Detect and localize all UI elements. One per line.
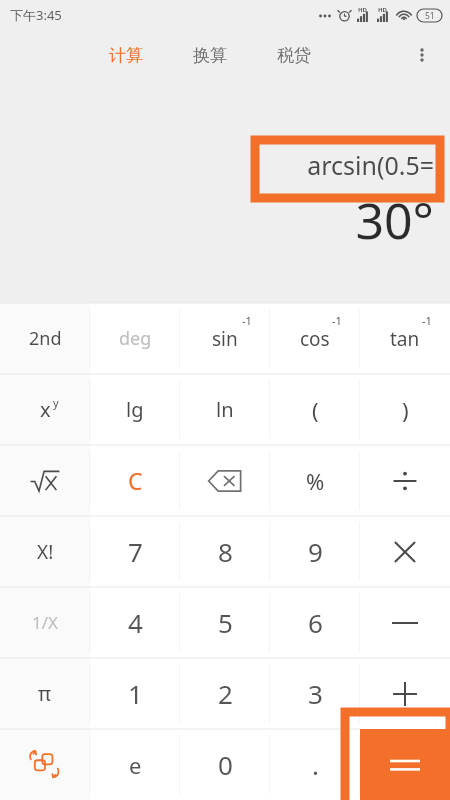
- button[interactable]: 换算: [187, 39, 233, 72]
- staticText: 换算: [193, 45, 227, 66]
- button[interactable]: 6: [270, 587, 360, 658]
- staticText: -1: [422, 313, 432, 328]
- button[interactable]: 2: [180, 658, 270, 729]
- staticText: tan: [390, 326, 420, 352]
- button[interactable]: tan: [360, 303, 450, 374]
- staticText: HD: [378, 6, 387, 14]
- button[interactable]: %: [270, 445, 360, 516]
- staticText: .: [312, 747, 319, 782]
- button[interactable]: π: [0, 658, 90, 729]
- staticText: 3: [308, 676, 323, 711]
- button[interactable]: Plus: [360, 658, 450, 729]
- staticText: -1: [332, 313, 342, 328]
- button[interactable]: 0: [180, 729, 270, 800]
- staticText: 5: [218, 605, 233, 640]
- button[interactable]: 税贷: [271, 39, 317, 72]
- button[interactable]: Square root: [0, 445, 90, 516]
- staticText: sin: [212, 326, 238, 352]
- staticText: 4: [128, 605, 143, 640]
- button[interactable]: X!: [0, 516, 90, 587]
- button[interactable]: lg: [90, 374, 180, 445]
- button[interactable]: ln: [180, 374, 270, 445]
- staticText: ln: [216, 396, 234, 423]
- staticText: 7: [128, 534, 143, 569]
- staticText: ): [402, 395, 409, 425]
- button[interactable]: Minus: [360, 587, 450, 658]
- button[interactable]: Equals: [360, 729, 450, 800]
- button[interactable]: .: [270, 729, 360, 800]
- button[interactable]: 5: [180, 587, 270, 658]
- staticText: 税贷: [277, 45, 311, 66]
- staticText: (: [312, 395, 319, 425]
- button[interactable]: 2nd: [0, 303, 90, 374]
- button[interactable]: 8: [180, 516, 270, 587]
- staticText: y: [53, 395, 59, 410]
- staticText: X!: [37, 539, 54, 565]
- button[interactable]: 3: [270, 658, 360, 729]
- staticText: C: [128, 465, 143, 496]
- staticText: x: [40, 396, 51, 423]
- staticText: HD: [358, 6, 367, 14]
- staticText: π: [38, 680, 52, 707]
- staticText: 下午3:45: [10, 6, 62, 24]
- button[interactable]: x: [0, 374, 90, 445]
- staticText: %: [306, 466, 325, 496]
- staticText: 30°: [355, 186, 434, 254]
- button[interactable]: Convert: [0, 729, 90, 800]
- staticText: 1: [128, 676, 143, 711]
- staticText: 8: [218, 534, 233, 569]
- button[interactable]: 1: [90, 658, 180, 729]
- button[interactable]: (: [270, 374, 360, 445]
- button[interactable]: 1/X: [0, 587, 90, 658]
- staticText: 6: [308, 605, 323, 640]
- button[interactable]: ): [360, 374, 450, 445]
- button[interactable]: Backspace: [180, 445, 270, 516]
- button[interactable]: 7: [90, 516, 180, 587]
- staticText: 0: [218, 747, 233, 782]
- staticText: 2nd: [29, 326, 62, 351]
- button[interactable]: Divide: [360, 445, 450, 516]
- button[interactable]: e: [90, 729, 180, 800]
- staticText: cos: [300, 326, 330, 352]
- button[interactable]: 计算: [103, 39, 149, 72]
- button[interactable]: C: [90, 445, 180, 516]
- button[interactable]: Multiply: [360, 516, 450, 587]
- staticText: e: [129, 750, 142, 780]
- button[interactable]: sin: [180, 303, 270, 374]
- staticText: 计算: [109, 45, 143, 66]
- staticText: 1/X: [32, 611, 59, 634]
- button[interactable]: deg: [90, 303, 180, 374]
- staticText: deg: [119, 326, 152, 351]
- staticText: lg: [126, 396, 144, 423]
- staticText: 51: [425, 10, 435, 22]
- staticText: 9: [308, 534, 323, 569]
- button[interactable]: 9: [270, 516, 360, 587]
- staticText: 2: [218, 676, 233, 711]
- staticText: -1: [242, 313, 252, 328]
- button[interactable]: More options: [402, 35, 442, 75]
- button[interactable]: cos: [270, 303, 360, 374]
- staticText: arcsin(0.5=: [307, 148, 434, 182]
- button[interactable]: 4: [90, 587, 180, 658]
